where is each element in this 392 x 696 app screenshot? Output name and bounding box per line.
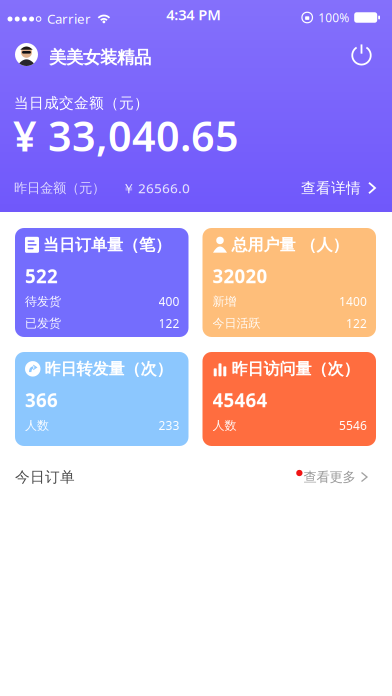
staticText: 昨日转发量（次） <box>44 359 172 379</box>
staticText: 人数 <box>25 418 49 433</box>
staticText: 233 <box>158 417 179 433</box>
staticText: 32020 <box>212 264 267 288</box>
staticText: 当日成交金额（元） <box>14 94 149 112</box>
staticText: ￥ 26566.0 <box>122 179 190 197</box>
staticText: ¥ 33,040.65 <box>13 108 239 163</box>
staticText: 100% <box>318 9 349 25</box>
staticText: 总用户量 （人） <box>231 235 348 255</box>
staticText: 昨日金额（元） <box>14 180 105 196</box>
staticText: 查看更多 <box>303 469 355 485</box>
staticText: 522 <box>25 264 58 288</box>
button[interactable]: 昨日转发量（次） <box>15 352 188 446</box>
staticText: 当日订单量（笔） <box>43 235 171 255</box>
staticText: 今日活跃 <box>212 316 260 331</box>
button[interactable]: 总用户量 （人） <box>202 228 376 337</box>
staticText: 新增 <box>212 294 236 309</box>
button[interactable]: 查看更多 <box>296 469 367 485</box>
staticText: 人数 <box>212 418 236 433</box>
staticText: 122 <box>158 315 179 331</box>
button[interactable]: 退出 <box>349 42 374 67</box>
staticText: 昨日访问量（次） <box>231 359 359 379</box>
staticText: 查看详情 <box>301 179 361 197</box>
staticText: 400 <box>158 293 179 309</box>
staticText: 4:34 PM <box>166 5 221 24</box>
staticText: 366 <box>25 388 58 412</box>
staticText: 待发货 <box>25 294 61 309</box>
staticText: 122 <box>346 315 367 331</box>
button[interactable]: 昨日访问量（次） <box>202 352 376 446</box>
staticText: 今日订单 <box>15 468 75 486</box>
button[interactable]: 查看详情 <box>301 179 375 197</box>
staticText: 45464 <box>212 388 267 412</box>
staticText: 1400 <box>339 293 367 309</box>
staticText: 5546 <box>339 417 367 433</box>
button[interactable]: 当日订单量（笔） <box>15 228 188 337</box>
staticText: Carrier <box>47 10 91 27</box>
staticText: 已发货 <box>25 316 61 331</box>
staticText: 美美女装精品 <box>49 47 151 68</box>
